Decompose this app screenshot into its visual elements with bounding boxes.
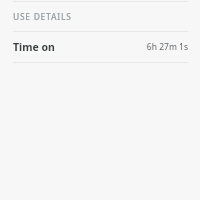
- staticText: USE DETAILS: [13, 11, 72, 23]
- button[interactable]: Time on: [0, 32, 200, 62]
- staticText: Time on: [13, 40, 55, 54]
- staticText: 6h 27m 1s: [146, 41, 188, 53]
